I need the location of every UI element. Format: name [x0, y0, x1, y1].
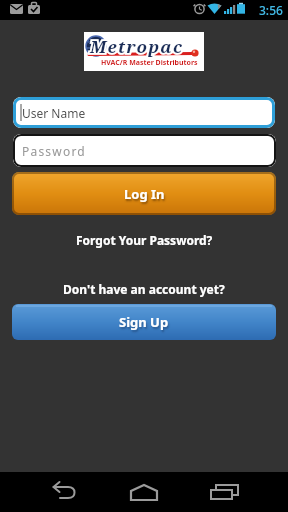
staticText: Password	[22, 143, 86, 159]
button[interactable]	[204, 472, 244, 512]
button[interactable]	[124, 472, 164, 512]
button[interactable]: Password	[13, 134, 276, 167]
staticText: Sign Up	[119, 313, 169, 331]
staticText: Metropac	[90, 35, 184, 58]
staticText: Don't have an account yet?	[63, 281, 225, 297]
staticText: 3:56	[259, 2, 283, 18]
staticText: HVAC/R Master Distributors	[101, 58, 198, 68]
staticText: Log In	[124, 185, 165, 203]
staticText: Metropac	[90, 35, 184, 58]
button[interactable]: Forgot Your Password?	[0, 230, 288, 250]
staticText: User Name	[22, 105, 86, 121]
staticText: Forgot Your Password?	[76, 232, 213, 248]
button[interactable]: Sign Up	[12, 304, 276, 340]
button[interactable]: User Name	[13, 97, 275, 128]
button[interactable]: Log In	[12, 172, 276, 215]
button[interactable]	[44, 472, 84, 512]
